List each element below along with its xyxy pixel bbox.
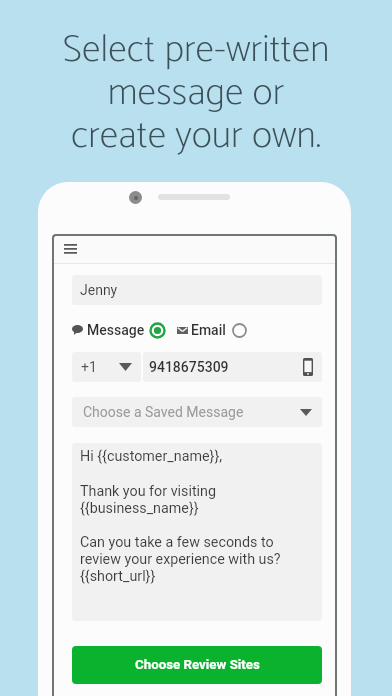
button[interactable]: Choose a Saved Message [72, 397, 322, 427]
button[interactable]: 9418675309 [143, 352, 322, 382]
staticText: 9418675309 [149, 359, 229, 375]
staticText: +1 [81, 359, 97, 375]
button[interactable]: Hi {{customer_name}}, Thank you for visi… [72, 443, 322, 621]
staticText: Choose Review Sites [135, 657, 260, 673]
staticText: Jenny [80, 282, 118, 298]
staticText: Email [191, 322, 226, 338]
staticText: Hi {{customer_name}}, Thank you for visi… [80, 448, 281, 584]
button[interactable]: +1 [72, 352, 141, 382]
button[interactable]: Jenny [72, 275, 322, 305]
button[interactable]: Email [191, 322, 231, 338]
button[interactable]: Message [87, 322, 145, 338]
button[interactable]: Email option [232, 323, 247, 338]
staticText: Message [87, 322, 145, 338]
staticText: Choose a Saved Message [83, 404, 244, 420]
button[interactable]: Menu [64, 241, 77, 256]
button[interactable]: Message selected [149, 322, 166, 339]
button[interactable]: Choose Review Sites [72, 646, 322, 684]
staticText: Select pre-written message or create you… [0, 19, 392, 167]
